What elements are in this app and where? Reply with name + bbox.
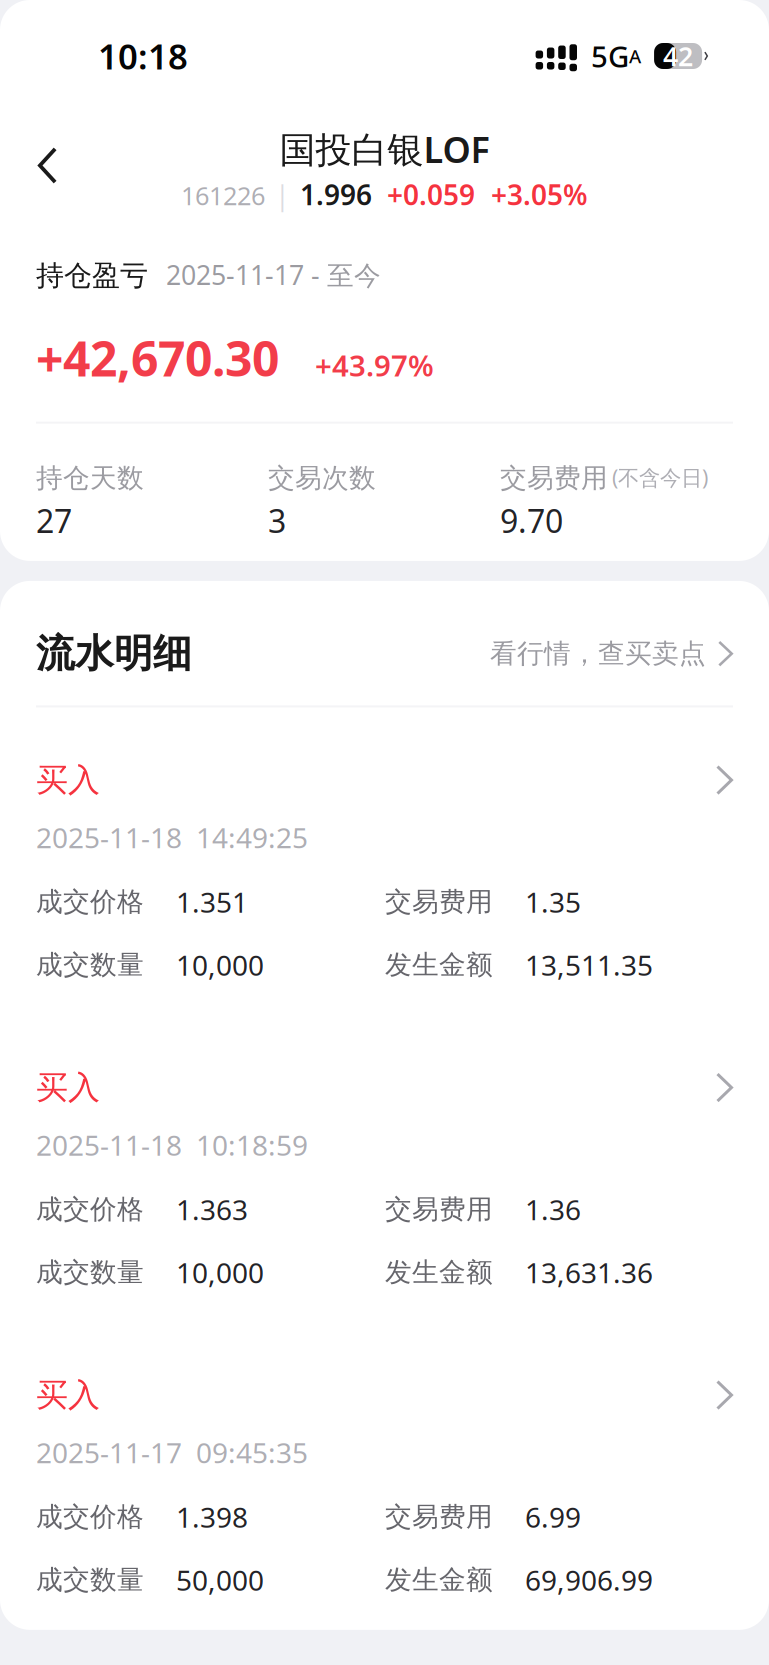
staticText: 发生金额 — [385, 948, 493, 981]
button[interactable]: Back — [0, 112, 81, 200]
staticText: 交易费用 — [500, 462, 608, 494]
staticText: 1.36 — [525, 1191, 581, 1228]
staticText: A — [629, 44, 641, 68]
staticText: 2025-11-18 14:49:25 — [36, 819, 308, 856]
staticText: 流水明细 — [36, 630, 192, 677]
staticText: 10,000 — [176, 1254, 264, 1291]
staticText: 1.363 — [176, 1191, 248, 1228]
staticText: 成交数量 — [36, 1256, 144, 1289]
staticText: +3.05% — [491, 176, 588, 213]
staticText: 10,000 — [176, 946, 264, 983]
staticText: 国投白银LOF — [279, 125, 489, 173]
staticText: 13,631.36 — [525, 1254, 653, 1291]
button[interactable]: 买入 — [0, 1015, 769, 1322]
staticText: 交易费用 — [385, 885, 493, 918]
staticText: 买入 — [36, 760, 100, 800]
staticText: 成交价格 — [36, 1193, 144, 1226]
staticText: 161226 — [181, 179, 265, 212]
staticText: 1.35 — [525, 883, 581, 920]
staticText: 发生金额 — [385, 1563, 493, 1596]
staticText: 交易费用 — [385, 1193, 493, 1226]
staticText: 27 — [36, 499, 72, 542]
staticText: 2025-11-18 10:18:59 — [36, 1126, 308, 1163]
staticText: | — [275, 177, 290, 213]
staticText: 发生金额 — [385, 1256, 493, 1289]
staticText: 69,906.99 — [525, 1561, 653, 1598]
staticText: 10:18 — [98, 33, 188, 79]
staticText: 成交数量 — [36, 948, 144, 981]
staticText: 50,000 — [176, 1561, 264, 1598]
staticText: 买入 — [36, 1375, 100, 1415]
staticText: 看行情，查买卖点 — [490, 637, 706, 670]
staticText: +42,670.30 — [36, 326, 279, 390]
staticText: 交易次数 — [268, 462, 376, 494]
staticText: 持仓盈亏 — [36, 258, 148, 293]
button[interactable]: 买入 — [0, 1322, 769, 1630]
staticText: 3 — [268, 499, 286, 542]
staticText: +0.059 — [387, 176, 475, 213]
staticText: 1.351 — [176, 883, 248, 920]
staticText: 1.996 — [300, 176, 372, 213]
staticText: 2025-11-17 09:45:35 — [36, 1434, 308, 1471]
staticText: 13,511.35 — [525, 946, 653, 983]
staticText: 2025-11-17 - 至今 — [166, 257, 381, 292]
staticText: 持仓天数 — [36, 462, 144, 494]
staticText: 成交价格 — [36, 1500, 144, 1533]
button[interactable]: 流水明细 — [0, 581, 769, 705]
staticText: +43.97% — [315, 346, 434, 385]
staticText: 42 — [663, 38, 693, 74]
staticText: 交易费用 — [385, 1500, 493, 1533]
staticText: 1.398 — [176, 1498, 248, 1535]
staticText: 买入 — [36, 1068, 100, 1107]
staticText: 6.99 — [525, 1498, 581, 1535]
staticText: 成交数量 — [36, 1563, 144, 1596]
staticText: 成交价格 — [36, 885, 144, 918]
staticText: 5G — [591, 36, 629, 75]
staticText: 9.70 — [500, 499, 563, 542]
button[interactable]: 买入 — [0, 707, 769, 1015]
staticText: (不含今日) — [612, 463, 708, 491]
